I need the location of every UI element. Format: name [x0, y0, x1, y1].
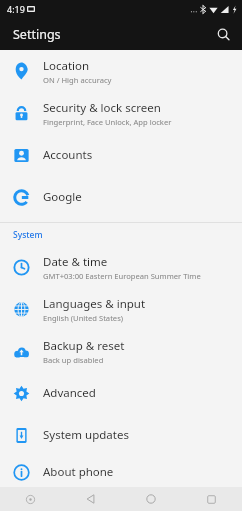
button[interactable]: Accounts	[0, 134, 242, 176]
button[interactable]: Google	[0, 176, 242, 218]
staticText: ON / High accuracy	[43, 75, 112, 85]
staticText: System updates	[43, 427, 129, 443]
staticText: GMT+03:00 Eastern European Summer Time	[43, 271, 201, 281]
button[interactable]: Search	[210, 21, 236, 47]
button[interactable]: Location	[0, 50, 242, 92]
button[interactable]: Back	[60, 487, 120, 511]
staticText: Backup & reset	[43, 338, 125, 354]
button[interactable]: Advanced	[0, 372, 242, 414]
button[interactable]: Security & lock screen	[0, 92, 242, 134]
staticText: Accounts	[43, 147, 93, 163]
button[interactable]: Assistant	[0, 487, 60, 511]
staticText: Back up disabled	[43, 355, 104, 365]
staticText: System	[13, 229, 43, 241]
staticText: About phone	[43, 464, 114, 480]
button[interactable]: Backup & reset	[0, 330, 242, 372]
button[interactable]: Languages & input	[0, 288, 242, 330]
staticText: Advanced	[43, 385, 96, 401]
button[interactable]: About phone	[0, 456, 242, 487]
button[interactable]: System updates	[0, 414, 242, 456]
staticText: Fingerprint, Face Unlock, App locker	[43, 117, 172, 127]
button[interactable]: Home	[120, 487, 181, 511]
staticText: 4:19	[7, 3, 25, 15]
staticText: English (United States)	[43, 313, 124, 323]
staticText: Languages & input	[43, 296, 146, 312]
button[interactable]: Recent apps	[181, 487, 242, 511]
staticText: Google	[43, 189, 82, 205]
staticText: Location	[43, 58, 90, 74]
staticText: Date & time	[43, 254, 108, 270]
staticText: Security & lock screen	[43, 100, 161, 116]
staticText: Settings	[13, 26, 61, 43]
button[interactable]: Date & time	[0, 246, 242, 288]
